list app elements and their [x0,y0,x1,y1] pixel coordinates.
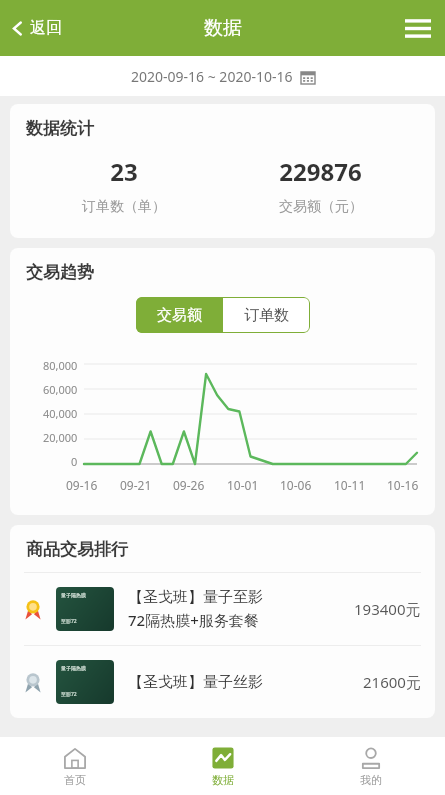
staticText: 至影72 [61,691,77,698]
staticText: 40,000 [43,406,78,421]
staticText: 数据 [204,16,242,40]
staticText: 商品交易排行 [26,539,128,560]
staticText: 订单数（单） [82,198,166,216]
button[interactable]: 交易额 [136,297,223,333]
staticText: 10-01 [227,477,259,493]
staticText: 交易额（元） [279,198,363,216]
staticText: 193400元 [354,599,421,619]
staticText: 09-21 [120,477,152,493]
staticText: 首页 [64,773,86,787]
staticText: 交易额 [157,306,202,325]
staticText: 数据 [212,773,234,787]
staticText: 09-16 [66,477,98,493]
staticText: 0 [71,454,78,469]
staticText: 23 [110,155,138,188]
staticText: 量子隔热膜 [61,592,86,598]
staticText: 我的 [360,773,382,787]
staticText: 量子隔热膜 [61,665,86,671]
staticText: 80,000 [43,358,78,373]
button[interactable]: 返回 [0,10,74,46]
staticText: 返回 [30,18,62,38]
staticText: 10-06 [280,477,312,493]
staticText: 订单数 [244,306,289,325]
staticText: 21600元 [363,672,421,692]
staticText: 【圣戈班】量子丝影 [128,673,357,692]
button[interactable]: 首页 [0,737,149,795]
staticText: 09-26 [173,477,205,493]
staticText: 2020-09-16 ~ 2020-10-16 [131,67,293,86]
button[interactable]: 订单数 [223,297,310,333]
staticText: 10-11 [334,477,366,493]
staticText: 至影72 [61,618,77,625]
staticText: 229876 [279,155,362,188]
staticText: 【圣戈班】量子至影 72隔热膜+服务套餐 [128,588,348,631]
button[interactable]: 量子隔热膜 [10,573,435,645]
staticText: 10-16 [387,477,419,493]
staticText: 60,000 [43,382,78,397]
staticText: 20,000 [43,430,78,445]
button[interactable]: 2020-09-16 ~ 2020-10-16 [131,67,315,86]
staticText: 交易趋势 [26,262,94,283]
button[interactable]: 数据 [149,737,297,795]
button[interactable]: 量子隔热膜 [10,646,435,718]
button[interactable]: 我的 [297,737,445,795]
button[interactable]: Menu [391,5,445,52]
staticText: 数据统计 [26,118,94,139]
